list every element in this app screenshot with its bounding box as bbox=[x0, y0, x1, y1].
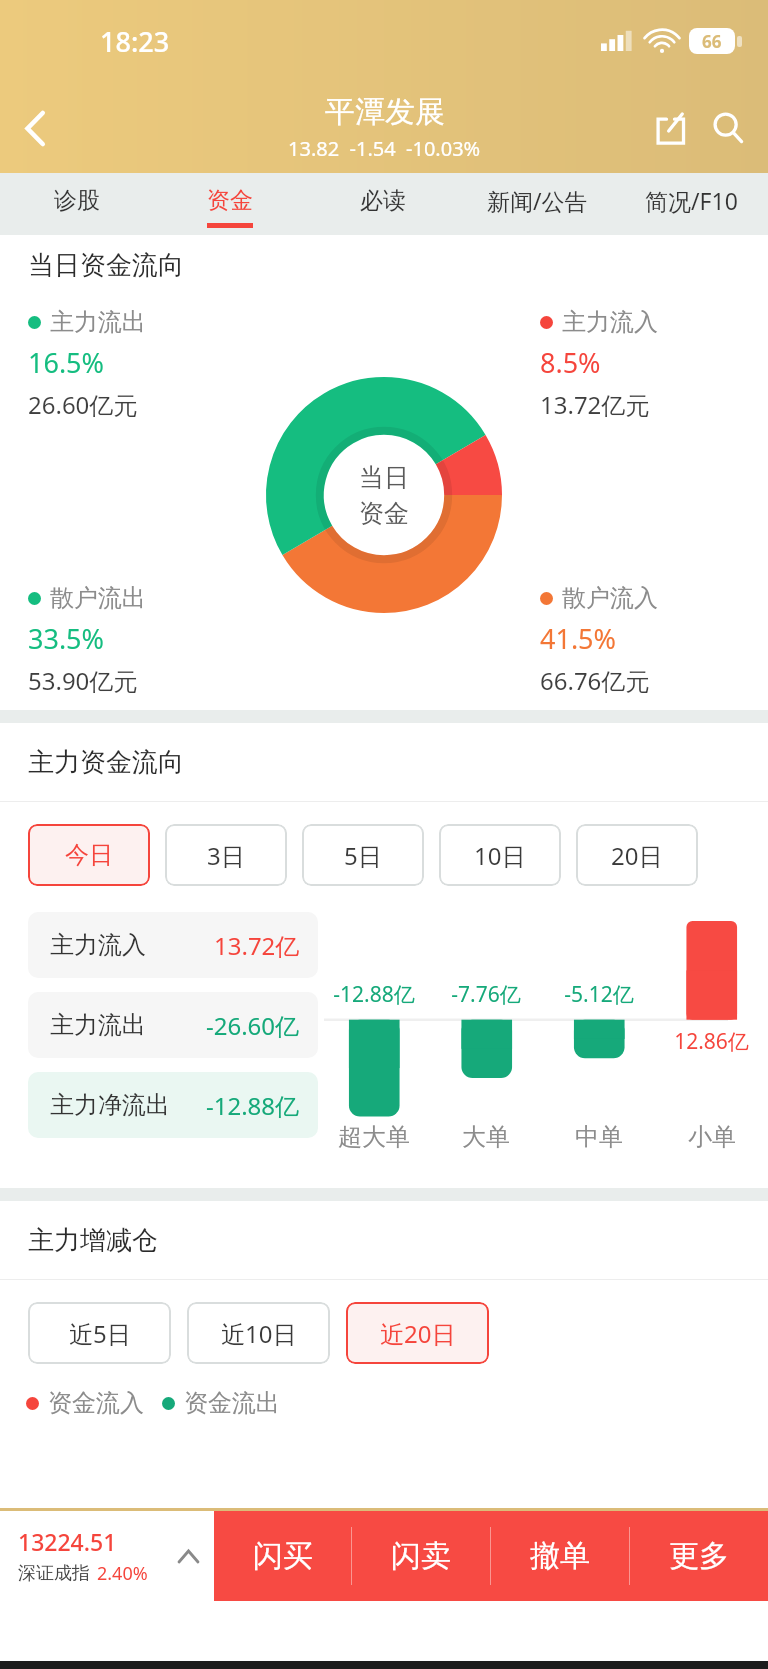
staticText: 超大单 bbox=[338, 1122, 410, 1152]
button[interactable]: 13224.51 bbox=[0, 1511, 214, 1601]
button[interactable]: 主力净流出 bbox=[28, 1072, 318, 1138]
staticText: 资金流出 bbox=[184, 1388, 280, 1418]
staticText: 新闻/公告 bbox=[487, 185, 588, 216]
button[interactable]: 主力流出 bbox=[28, 992, 318, 1058]
staticText: 散户流入 bbox=[562, 583, 658, 613]
staticText: 12.86亿 bbox=[674, 1027, 749, 1056]
button[interactable]: 近10日 bbox=[187, 1302, 330, 1364]
staticText: -12.88亿 bbox=[206, 1089, 300, 1122]
staticText: 散户流出 bbox=[50, 583, 146, 613]
staticText: 3日 bbox=[207, 839, 245, 872]
staticText: 13.72亿元 bbox=[540, 388, 650, 421]
staticText: 闪卖 bbox=[391, 1537, 451, 1575]
button[interactable]: Share bbox=[642, 100, 698, 156]
button[interactable]: 闪卖 bbox=[352, 1511, 490, 1601]
staticText: 主力流出 bbox=[50, 307, 146, 337]
staticText: 33.5% bbox=[28, 620, 105, 657]
button[interactable]: 诊股 bbox=[0, 173, 153, 235]
button[interactable]: Back bbox=[6, 99, 64, 157]
staticText: 更多 bbox=[669, 1537, 729, 1575]
staticText: -7.76亿 bbox=[451, 980, 521, 1009]
staticText: -26.60亿 bbox=[206, 1009, 300, 1042]
staticText: 主力流入 bbox=[50, 930, 146, 960]
staticText: 主力净流出 bbox=[50, 1090, 170, 1120]
staticText: 资金 bbox=[207, 186, 253, 215]
staticText: 资金 bbox=[359, 498, 409, 529]
button[interactable]: 简况/F10 bbox=[614, 173, 768, 235]
staticText: 13224.51 bbox=[18, 1526, 117, 1557]
staticText: 当日资金流向 bbox=[28, 249, 184, 282]
staticText: 近5日 bbox=[69, 1317, 131, 1350]
button[interactable]: Search bbox=[700, 100, 756, 156]
staticText: 平潭发展 bbox=[325, 93, 445, 131]
staticText: 近10日 bbox=[221, 1317, 297, 1350]
button[interactable]: 10日 bbox=[439, 824, 561, 886]
staticText: 当日 bbox=[359, 462, 409, 493]
staticText: 18:23 bbox=[100, 23, 170, 60]
staticText: 16.5% bbox=[28, 344, 105, 381]
button[interactable]: 更多 bbox=[630, 1511, 768, 1601]
staticText: 资金流入 bbox=[48, 1388, 144, 1418]
button[interactable]: 近20日 bbox=[346, 1302, 489, 1364]
staticText: 主力资金流向 bbox=[28, 746, 184, 779]
staticText: 撤单 bbox=[530, 1537, 590, 1575]
staticText: 26.60亿元 bbox=[28, 388, 138, 421]
staticText: 近20日 bbox=[380, 1317, 456, 1350]
button[interactable]: 必读 bbox=[306, 173, 460, 235]
button[interactable]: 主力流入 bbox=[28, 912, 318, 978]
staticText: -5.12亿 bbox=[564, 980, 634, 1009]
staticText: 20日 bbox=[611, 839, 663, 872]
staticText: 10日 bbox=[474, 839, 526, 872]
staticText: 13.82 -1.54 -10.03% bbox=[288, 135, 481, 162]
button[interactable]: 20日 bbox=[576, 824, 698, 886]
staticText: 13.72亿 bbox=[214, 929, 300, 962]
staticText: 5日 bbox=[344, 839, 382, 872]
staticText: 8.5% bbox=[540, 344, 601, 381]
staticText: 小单 bbox=[688, 1122, 736, 1152]
staticText: 诊股 bbox=[54, 186, 100, 215]
button[interactable]: 撤单 bbox=[491, 1511, 629, 1601]
staticText: 深证成指 bbox=[18, 1562, 90, 1585]
staticText: 66 bbox=[702, 30, 722, 53]
staticText: 大单 bbox=[462, 1122, 510, 1152]
staticText: -12.88亿 bbox=[333, 980, 415, 1009]
staticText: 必读 bbox=[360, 186, 406, 215]
staticText: 主力流入 bbox=[562, 307, 658, 337]
button[interactable]: 新闻/公告 bbox=[460, 173, 614, 235]
button[interactable]: 今日 bbox=[28, 824, 150, 886]
button[interactable]: 近5日 bbox=[28, 1302, 171, 1364]
staticText: 主力流出 bbox=[50, 1010, 146, 1040]
staticText: 中单 bbox=[575, 1122, 623, 1152]
button[interactable]: 闪买 bbox=[214, 1511, 351, 1601]
staticText: 闪买 bbox=[253, 1537, 313, 1575]
staticText: 41.5% bbox=[540, 620, 617, 657]
staticText: 53.90亿元 bbox=[28, 664, 138, 697]
staticText: 2.40% bbox=[97, 1561, 148, 1586]
staticText: 66.76亿元 bbox=[540, 664, 650, 697]
button[interactable]: 3日 bbox=[165, 824, 287, 886]
staticText: 主力增减仓 bbox=[28, 1224, 158, 1257]
staticText: 今日 bbox=[65, 840, 113, 870]
button[interactable]: 5日 bbox=[302, 824, 424, 886]
button[interactable]: 资金 bbox=[153, 173, 306, 235]
staticText: 简况/F10 bbox=[645, 185, 738, 216]
